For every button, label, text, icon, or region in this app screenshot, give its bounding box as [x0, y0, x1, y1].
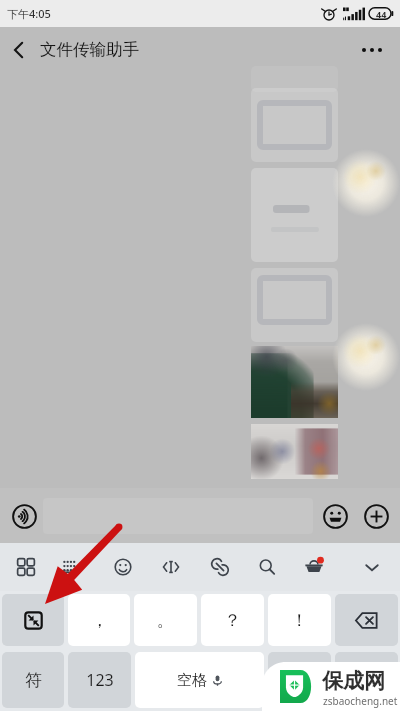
staticText: 。 — [157, 610, 174, 631]
button[interactable]: ， — [68, 594, 130, 646]
staticText: 符 — [25, 670, 42, 691]
button[interactable]: clip — [199, 546, 241, 588]
button[interactable]: More — [357, 497, 395, 535]
button[interactable]: Voice input — [5, 497, 43, 535]
staticText: 123 — [86, 669, 114, 691]
staticText: 文件传输助手 — [40, 39, 139, 60]
button[interactable]: 符 — [2, 652, 64, 708]
button[interactable]: ？ — [201, 594, 264, 646]
button[interactable] — [43, 498, 313, 534]
staticText: ？ — [224, 610, 241, 631]
button[interactable]: key2 — [335, 652, 398, 708]
button[interactable]: Collapse keyboard — [2, 594, 64, 646]
button[interactable]: cursor — [150, 546, 192, 588]
button[interactable]: More options — [351, 27, 393, 72]
button[interactable]: ！ — [268, 594, 331, 646]
staticText: ， — [91, 610, 108, 631]
button[interactable]: grid — [5, 546, 47, 588]
button[interactable]: Emoji — [316, 497, 354, 535]
staticText: 空格 — [177, 671, 207, 690]
button[interactable]: key — [268, 652, 331, 708]
button[interactable]: car — [293, 546, 335, 588]
staticText: 下午4:05 — [7, 6, 51, 21]
button[interactable]: Backspace — [335, 594, 398, 646]
staticText: 保成网 — [322, 668, 385, 694]
button[interactable]: emoji — [102, 546, 144, 588]
button[interactable]: Back — [0, 27, 38, 72]
staticText: 44 — [376, 8, 387, 20]
button[interactable]: down — [351, 546, 393, 588]
button[interactable]: search — [246, 546, 288, 588]
button[interactable]: 123 — [68, 652, 131, 708]
staticText: zsbaocheng.net — [323, 694, 398, 708]
button[interactable]: kbdots — [49, 546, 91, 588]
button[interactable]: 空格 — [135, 652, 264, 708]
button[interactable]: 。 — [134, 594, 197, 646]
staticText: ！ — [291, 610, 308, 631]
